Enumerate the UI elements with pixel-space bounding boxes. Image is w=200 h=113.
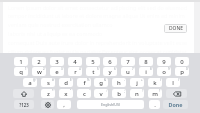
staticText: & [104, 78, 107, 82]
staticText: 1 [25, 67, 27, 71]
staticText: 7 [132, 67, 134, 71]
staticText: ! [142, 89, 143, 93]
button[interactable]: q [14, 67, 28, 76]
staticText: m [152, 90, 158, 98]
staticText: cillum dolore eu fugiat nulla pariatur E… [8, 48, 190, 55]
button[interactable]: d [59, 78, 73, 87]
staticText: l [172, 79, 174, 87]
staticText: g [99, 79, 103, 87]
button[interactable]: 9 [157, 57, 171, 66]
staticText: 4 [73, 58, 77, 66]
staticText: e [55, 68, 59, 76]
button[interactable]: ?123 [14, 100, 34, 109]
staticText: 3 [61, 67, 63, 71]
button[interactable]: l [166, 78, 180, 87]
button[interactable]: z [41, 89, 55, 98]
button[interactable]: 1 [14, 57, 28, 66]
button[interactable]: c [77, 89, 91, 98]
staticText: f [83, 79, 86, 87]
staticText: @ [33, 78, 36, 82]
staticText: " [70, 89, 72, 93]
button[interactable]: 8 [139, 57, 153, 66]
staticText: + [141, 78, 143, 82]
button[interactable]: f [77, 78, 91, 87]
staticText: . [154, 101, 156, 109]
button[interactable]: p [175, 67, 189, 76]
staticText: n [135, 90, 139, 98]
staticText: h [117, 79, 121, 87]
staticText: 5 [97, 67, 99, 71]
staticText: b [117, 90, 121, 98]
staticText: x [64, 90, 68, 98]
button[interactable]: h [112, 78, 126, 87]
button[interactable]: DONE [164, 24, 187, 33]
staticText: 4 [79, 67, 81, 71]
staticText: , [63, 101, 65, 109]
staticText: veniam quis nostrud exercitation ullamco [8, 21, 190, 28]
button[interactable]: k [148, 78, 162, 87]
staticText: 6 [108, 58, 112, 66]
staticText: i [145, 68, 147, 76]
staticText: y [108, 68, 112, 76]
staticText: 2 [37, 58, 41, 66]
staticText: a [28, 79, 32, 87]
button[interactable]: . [149, 100, 160, 109]
button[interactable]: Done [163, 100, 188, 109]
button[interactable]: , [57, 100, 71, 109]
button[interactable]: j [130, 78, 144, 87]
staticText: r [74, 68, 77, 76]
button[interactable]: m [148, 89, 162, 98]
button[interactable]: u [121, 67, 135, 76]
button[interactable]: x [59, 89, 73, 98]
button[interactable]: 6 [103, 57, 117, 66]
staticText: English(US) [101, 102, 120, 107]
button[interactable]: English(US) [77, 100, 144, 109]
staticText: w [37, 68, 42, 76]
button[interactable]: Settings [41, 100, 54, 109]
staticText: % [87, 78, 90, 82]
button[interactable]: Shift [13, 89, 34, 98]
button[interactable]: o [157, 67, 171, 76]
button[interactable]: r [68, 67, 82, 76]
staticText: DONE [169, 25, 183, 32]
staticText: 6 [114, 67, 116, 71]
button[interactable]: 5 [86, 57, 100, 66]
button[interactable]: s [41, 78, 55, 87]
button[interactable]: Backspace [166, 89, 187, 98]
staticText: t [92, 68, 95, 76]
staticText: # [52, 78, 54, 82]
staticText: 9 [162, 58, 166, 66]
staticText: * [52, 89, 54, 93]
button[interactable]: 7 [121, 57, 135, 66]
staticText: ) [178, 78, 179, 82]
button[interactable]: w [32, 67, 46, 76]
staticText: j [136, 79, 138, 87]
staticText: q [19, 68, 23, 76]
button[interactable]: 2 [32, 57, 46, 66]
staticText: k [153, 79, 157, 87]
button[interactable]: 0 [175, 57, 189, 66]
button[interactable]: a [23, 78, 37, 87]
button[interactable]: n [130, 89, 144, 98]
button[interactable]: 3 [50, 57, 64, 66]
button[interactable]: b [112, 89, 126, 98]
staticText: s [47, 79, 50, 87]
button[interactable]: e [50, 67, 64, 76]
button[interactable]: y [103, 67, 117, 76]
staticText: ?123 [19, 102, 29, 108]
staticText: c [83, 90, 86, 98]
button[interactable]: i [139, 67, 153, 76]
staticText: laboris nisi ut aliquip ex ea commodo [8, 30, 190, 37]
staticText: 8 [150, 67, 152, 71]
staticText: 0 [186, 67, 188, 71]
staticText: z [47, 90, 50, 98]
staticText: 3 [55, 58, 59, 66]
staticText: 2 [43, 67, 45, 71]
button[interactable]: 4 [68, 57, 82, 66]
button[interactable]: v [94, 89, 108, 98]
button[interactable]: g [94, 78, 108, 87]
button[interactable]: t [86, 67, 100, 76]
